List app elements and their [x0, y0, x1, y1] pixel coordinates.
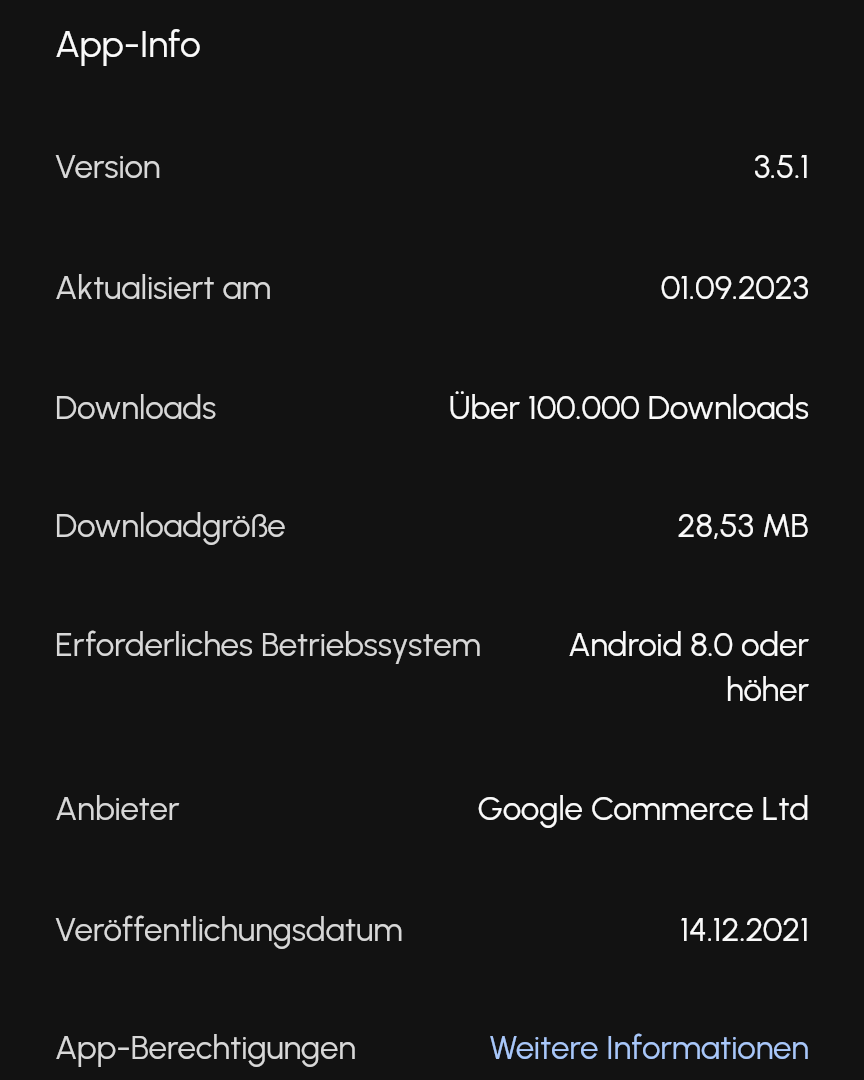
- staticText: Downloadgröße: [55, 506, 455, 546]
- staticText: 3.5.1: [455, 147, 809, 187]
- button[interactable]: Aktualisiert am: [0, 219, 864, 338]
- staticText: Google Commerce Ltd: [455, 789, 809, 829]
- staticText: 28,53 MB: [455, 506, 809, 546]
- button[interactable]: Version: [0, 100, 864, 219]
- staticText: Weitere Informationen: [455, 1028, 809, 1068]
- button[interactable]: Downloads: [0, 338, 864, 457]
- button[interactable]: Veröffentlichungsdatum: [0, 860, 864, 978]
- staticText: 14.12.2021: [455, 910, 809, 950]
- button[interactable]: Downloadgröße: [0, 457, 864, 576]
- staticText: 01.09.2023: [455, 268, 809, 308]
- staticText: Android 8.0 oder höher: [500, 625, 809, 709]
- button[interactable]: App-Berechtigungen: [0, 978, 864, 1080]
- other: App-Info: [0, 0, 864, 1080]
- staticText: Aktualisiert am: [55, 268, 455, 308]
- staticText: Downloads: [55, 388, 435, 428]
- staticText: Version: [55, 147, 455, 187]
- button[interactable]: Erforderliches Betriebssystem: [0, 576, 864, 740]
- staticText: Erforderliches Betriebssystem: [55, 625, 500, 665]
- staticText: App-Info: [55, 22, 864, 122]
- staticText: Anbieter: [55, 789, 455, 829]
- staticText: Über 100.000 Downloads: [435, 388, 809, 428]
- staticText: Veröffentlichungsdatum: [55, 910, 455, 950]
- button[interactable]: Anbieter: [0, 740, 864, 860]
- staticText: App-Berechtigungen: [55, 1028, 455, 1068]
